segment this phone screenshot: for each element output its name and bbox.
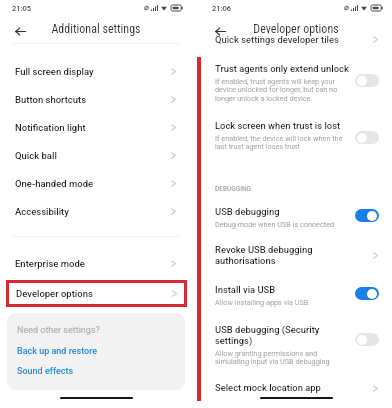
- button[interactable]: One-handed mode: [0, 169, 192, 197]
- button[interactable]: Notification light: [0, 113, 192, 141]
- button[interactable]: Back: [10, 21, 30, 41]
- button[interactable]: Sound effects: [17, 366, 74, 377]
- staticText: Additional settings: [0, 22, 192, 36]
- staticText: If enabled, the device will lock when th…: [215, 134, 343, 143]
- button[interactable]: Turn on: [355, 131, 379, 144]
- staticText: Notification light: [15, 122, 86, 133]
- button[interactable]: Select mock location app: [200, 382, 392, 402]
- staticText: 21:06: [212, 4, 232, 13]
- button[interactable]: Turn off: [355, 209, 379, 222]
- staticText: USB debugging (Security: [215, 324, 320, 335]
- staticText: last trust agent loses trust: [215, 142, 300, 151]
- staticText: Need other settings?: [17, 325, 100, 336]
- staticText: Allow granting permissions and: [215, 349, 318, 358]
- button[interactable]: Turn on: [355, 74, 379, 87]
- button[interactable]: Full screen display: [0, 57, 192, 85]
- staticText: Revoke USB debugging: [215, 244, 313, 255]
- staticText: Install via USB: [215, 284, 276, 295]
- button[interactable]: Back up and restore: [17, 346, 98, 357]
- staticText: simulating input via USB debugging: [215, 357, 330, 366]
- staticText: Quick settings developer tiles: [215, 34, 339, 45]
- button[interactable]: Quick ball: [0, 141, 192, 169]
- button[interactable]: Back: [210, 21, 230, 41]
- button[interactable]: Lock screen when trust is lost: [200, 120, 392, 158]
- staticText: Debug mode when USB is connected: [215, 220, 335, 229]
- staticText: Button shortcuts: [15, 94, 87, 105]
- button[interactable]: Quick settings developer tiles: [200, 34, 392, 46]
- button[interactable]: Turn on: [355, 333, 379, 346]
- staticText: Enterprise mode: [15, 258, 85, 269]
- button[interactable]: Revoke USB debugging: [200, 244, 392, 274]
- button[interactable]: Accessibility: [0, 197, 192, 225]
- staticText: If enabled, trust agents will keep your: [215, 77, 336, 86]
- staticText: One-handed mode: [15, 178, 94, 189]
- staticText: DEBUGGING: [215, 185, 252, 193]
- staticText: Developer options: [200, 22, 392, 36]
- staticText: settings): [215, 335, 253, 346]
- staticText: Accessibility: [15, 206, 69, 217]
- staticText: USB debugging: [215, 206, 280, 217]
- staticText: Full screen display: [15, 66, 94, 77]
- staticText: Lock screen when trust is lost: [215, 120, 341, 131]
- staticText: Select mock location app: [215, 382, 321, 393]
- staticText: device unlocked for longer, but can no: [215, 85, 338, 94]
- button[interactable]: Enterprise mode: [0, 249, 192, 277]
- button[interactable]: USB debugging: [200, 206, 392, 236]
- button[interactable]: Install via USB: [200, 284, 392, 314]
- button[interactable]: Turn off: [355, 287, 379, 300]
- staticText: 21:05: [12, 4, 32, 13]
- button[interactable]: Developer options: [9, 283, 184, 304]
- staticText: Trust agents only extend unlock: [215, 63, 349, 74]
- staticText: Allow installing apps via USB: [215, 298, 309, 307]
- staticText: Quick ball: [15, 150, 57, 161]
- staticText: Developer options: [16, 288, 93, 299]
- staticText: authorisations: [215, 255, 276, 266]
- button[interactable]: USB debugging (Security: [200, 324, 392, 368]
- staticText: longer unlock a locked device.: [215, 94, 313, 103]
- button[interactable]: Trust agents only extend unlock: [200, 63, 392, 109]
- button[interactable]: Button shortcuts: [0, 85, 192, 113]
